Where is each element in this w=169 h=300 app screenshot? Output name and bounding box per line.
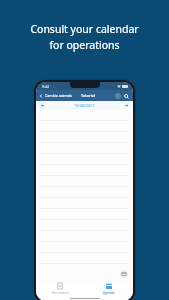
- staticText: Documenti: [52, 291, 69, 295]
- staticText: for operations: [49, 38, 120, 52]
- button[interactable]: [36, 154, 133, 165]
- button[interactable]: Calendar view: [120, 270, 128, 278]
- button[interactable]: [36, 198, 133, 209]
- button[interactable]: Search: [124, 94, 129, 99]
- button[interactable]: Previous day: [40, 103, 45, 108]
- button[interactable]: Next day: [124, 103, 129, 108]
- button[interactable]: [36, 132, 133, 143]
- button[interactable]: 15/06/2021: [74, 103, 95, 108]
- button[interactable]: [36, 110, 133, 121]
- staticText: Cambia azienda: [45, 93, 72, 98]
- button[interactable]: Documenti: [36, 282, 84, 296]
- button[interactable]: [36, 121, 133, 132]
- button[interactable]: [36, 253, 133, 264]
- button[interactable]: Agenda: [84, 282, 133, 296]
- button[interactable]: [36, 143, 133, 154]
- staticText: 9:44: [42, 84, 49, 89]
- staticText: Agenda: [103, 291, 115, 295]
- button[interactable]: [36, 165, 133, 176]
- other: Back: [39, 94, 43, 98]
- button[interactable]: [36, 187, 133, 198]
- button[interactable]: Tutorial: [81, 93, 95, 98]
- button[interactable]: [36, 242, 133, 253]
- button[interactable]: [36, 231, 133, 242]
- button[interactable]: [36, 209, 133, 220]
- button[interactable]: [36, 176, 133, 187]
- staticText: Consult your calendar: [30, 22, 139, 36]
- button[interactable]: Info: [115, 93, 121, 99]
- button[interactable]: [36, 220, 133, 231]
- button[interactable]: Back: [39, 93, 72, 98]
